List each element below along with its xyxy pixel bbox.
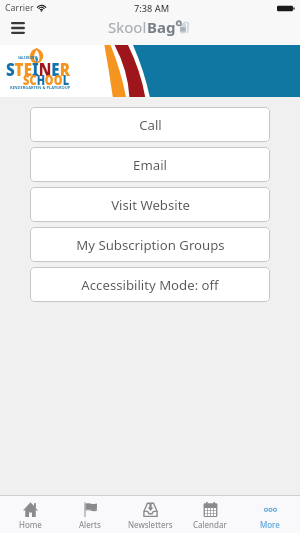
button[interactable]: Accessibility Mode: off (30, 267, 270, 302)
button[interactable]: My Subscription Groups (30, 227, 270, 262)
button[interactable]: Home (0, 496, 60, 533)
button[interactable]: Email (30, 147, 270, 182)
staticText: More (260, 519, 280, 530)
staticText: Alerts (79, 519, 101, 530)
staticText: T (14, 57, 24, 82)
staticText: Calendar (193, 519, 227, 530)
button[interactable]: Visit Website (30, 187, 270, 222)
staticText: Carrier (5, 2, 34, 14)
staticText: My Subscription Groups (76, 236, 225, 254)
staticText: Email (133, 156, 167, 174)
button[interactable]: Alerts (60, 496, 120, 533)
staticText: Newsletters (128, 519, 173, 530)
staticText: O (54, 71, 63, 89)
button[interactable]: More (240, 496, 300, 533)
staticText: R (60, 57, 70, 82)
staticText: KINDERGARTEN & PLAYGROUP (10, 85, 71, 90)
staticText: SALISBURY (18, 55, 37, 60)
staticText: 7:38 AM (134, 2, 170, 15)
button[interactable]: Call (30, 107, 270, 142)
staticText: N (39, 57, 51, 82)
button[interactable]: Calendar (180, 496, 240, 533)
button[interactable]: Menu (6, 16, 30, 40)
staticText: C (29, 71, 37, 89)
staticText: I (32, 57, 39, 82)
staticText: E (24, 57, 32, 82)
staticText: H (37, 71, 45, 89)
staticText: Call (139, 116, 162, 134)
staticText: O (45, 71, 54, 89)
staticText: L (63, 71, 69, 89)
staticText: S (23, 71, 29, 89)
staticText: Home (19, 519, 42, 530)
staticText: Skool (108, 17, 147, 37)
button[interactable]: Newsletters (120, 496, 180, 533)
staticText: Accessibility Mode: off (81, 276, 219, 294)
staticText: S (6, 57, 14, 82)
staticText: Bag (147, 17, 176, 37)
staticText: E (51, 57, 60, 82)
staticText: Visit Website (111, 196, 190, 214)
